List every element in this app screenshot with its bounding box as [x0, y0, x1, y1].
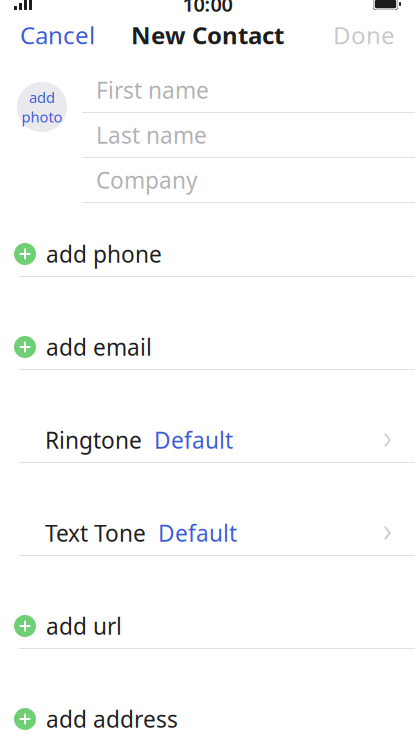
- staticText: Company: [96, 165, 198, 195]
- button[interactable]: Done: [313, 18, 415, 52]
- button[interactable]: Cancel: [0, 18, 115, 52]
- staticText: Last name: [96, 120, 207, 150]
- button[interactable]: add email: [0, 325, 415, 370]
- staticText: Done: [333, 19, 395, 51]
- staticText: Text Tone: [45, 518, 146, 548]
- staticText: Default: [154, 425, 233, 455]
- staticText: New Contact: [131, 19, 284, 51]
- staticText: Cancel: [20, 19, 95, 51]
- staticText: First name: [96, 75, 209, 105]
- button[interactable]: add phone: [0, 232, 415, 277]
- button[interactable]: add url: [0, 604, 415, 649]
- staticText: add url: [46, 611, 122, 641]
- staticText: photo: [21, 107, 62, 126]
- staticText: Ringtone: [45, 425, 142, 455]
- button[interactable]: Text Tone: [0, 511, 415, 556]
- staticText: add: [29, 87, 55, 107]
- staticText: add address: [46, 704, 178, 734]
- button[interactable]: add: [17, 82, 67, 132]
- button[interactable]: add address: [0, 697, 415, 738]
- staticText: add phone: [46, 239, 162, 269]
- staticText: add email: [46, 332, 152, 362]
- staticText: 10:00: [182, 0, 232, 17]
- staticText: Default: [158, 518, 237, 548]
- button[interactable]: Ringtone: [0, 418, 415, 463]
